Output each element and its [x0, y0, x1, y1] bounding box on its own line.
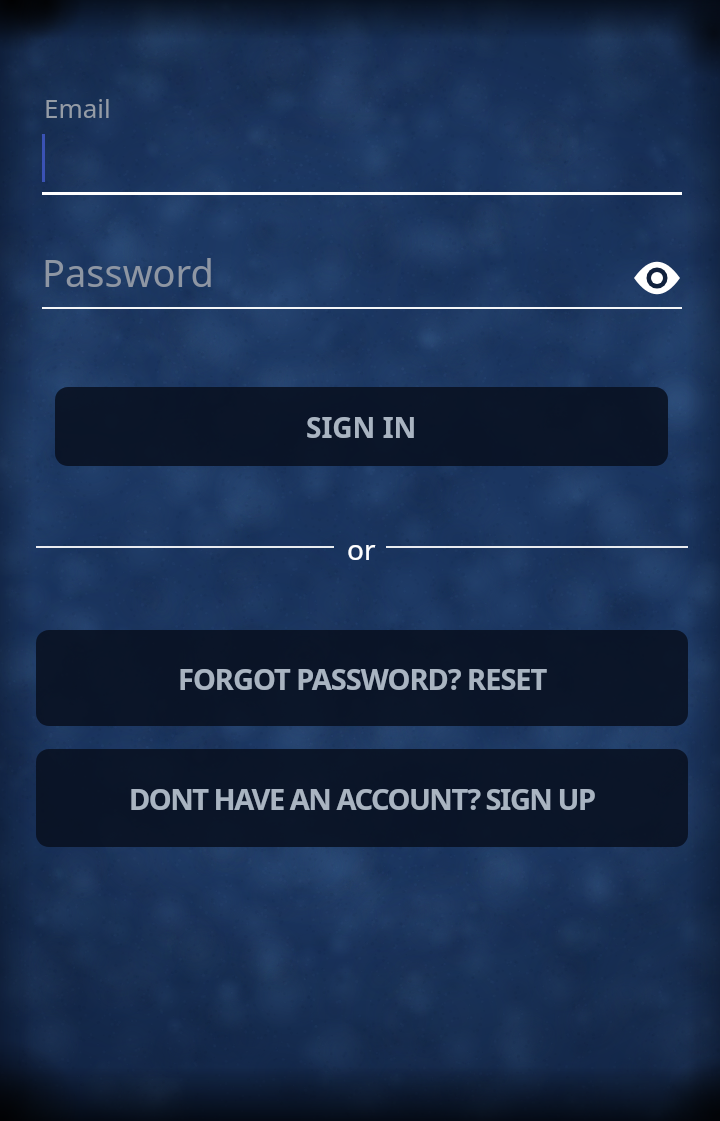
button[interactable]: DONT HAVE AN ACCOUNT? SIGN UP	[36, 749, 688, 847]
button[interactable]	[634, 262, 680, 294]
staticText: SIGN IN	[306, 408, 417, 446]
staticText: or	[347, 530, 376, 568]
staticText: Email	[44, 90, 111, 125]
staticText: FORGOT PASSWORD? RESET	[178, 659, 547, 698]
button[interactable]: SIGN IN	[55, 387, 668, 466]
staticText: Password	[42, 246, 214, 298]
button[interactable]: FORGOT PASSWORD? RESET	[36, 630, 688, 726]
button[interactable]	[42, 128, 682, 195]
staticText: DONT HAVE AN ACCOUNT? SIGN UP	[129, 779, 595, 818]
button[interactable]	[42, 248, 627, 309]
